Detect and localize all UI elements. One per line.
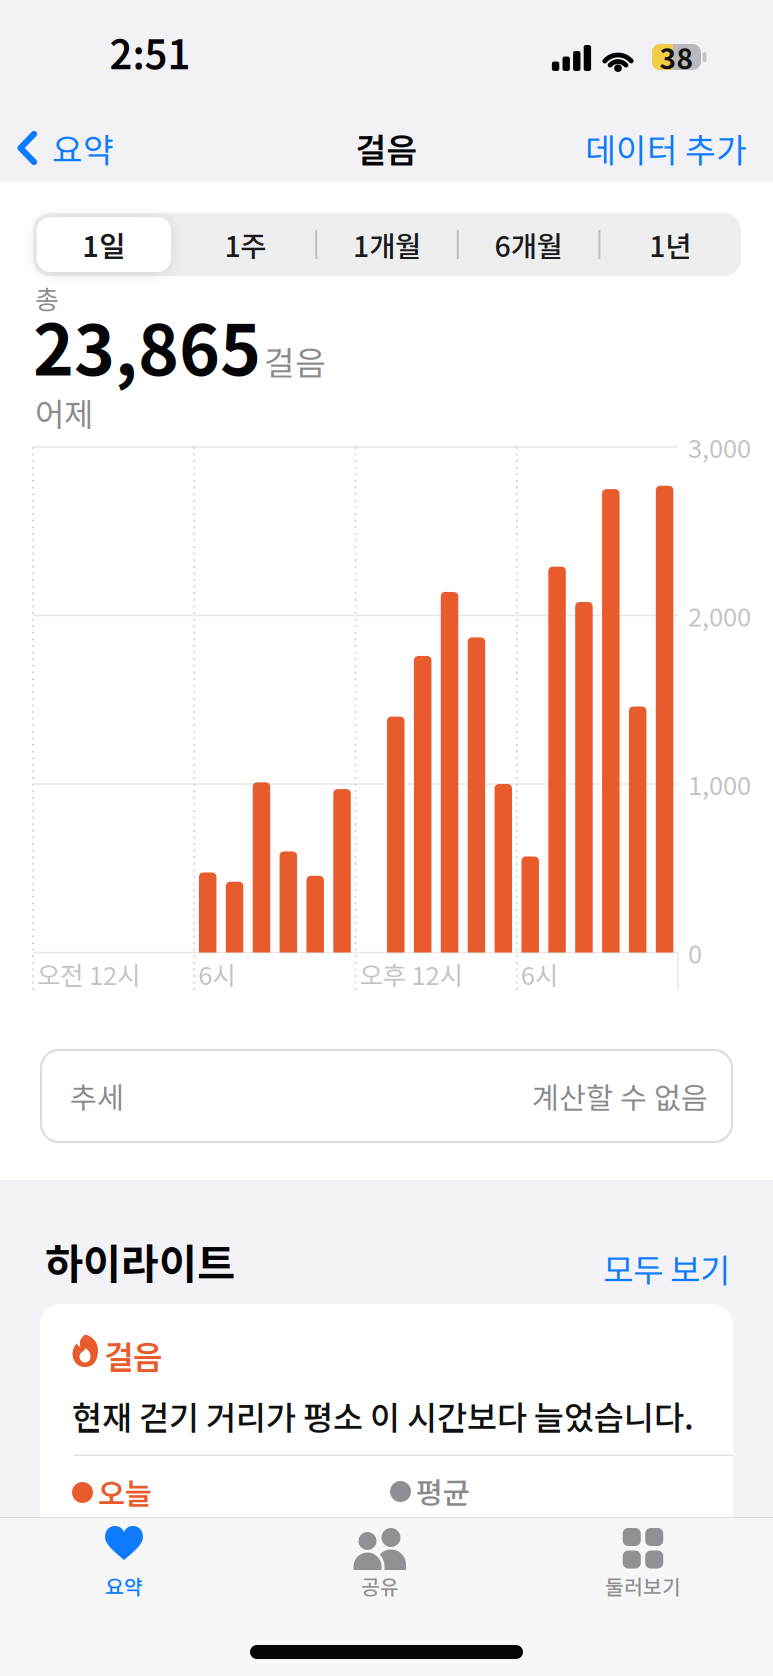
button[interactable]: 1일 bbox=[33, 213, 175, 276]
button[interactable]: 1개월 bbox=[316, 213, 458, 276]
staticText: 오전 12시 bbox=[37, 955, 140, 992]
staticText: 0 bbox=[688, 934, 702, 971]
staticText: 2:51 bbox=[109, 23, 190, 81]
staticText: 1개월 bbox=[353, 224, 421, 265]
staticText: 걸음 bbox=[104, 1332, 162, 1378]
button[interactable]: 6개월 bbox=[458, 213, 599, 276]
button[interactable]: 1년 bbox=[599, 213, 741, 276]
staticText: 2,000 bbox=[688, 597, 751, 634]
staticText: 1년 bbox=[649, 224, 691, 265]
staticText: 6시 bbox=[198, 955, 235, 992]
staticText: 둘러보기 bbox=[605, 1571, 681, 1600]
button[interactable]: 둘러보기 bbox=[553, 1528, 733, 1624]
staticText: 1,000 bbox=[688, 765, 751, 802]
staticText: 오늘 bbox=[98, 1471, 152, 1513]
staticText: 오후 12시 bbox=[359, 955, 462, 992]
staticText: 공유 bbox=[361, 1571, 399, 1600]
staticText: 3,000 bbox=[688, 428, 751, 465]
staticText: 계산할 수 없음 bbox=[532, 1075, 708, 1117]
staticText: 총 bbox=[35, 279, 59, 317]
staticText: 데이터 추가 bbox=[585, 124, 747, 172]
button[interactable]: 1주 bbox=[175, 213, 316, 276]
button[interactable]: 요약 bbox=[34, 1526, 214, 1622]
button[interactable]: 걸음 bbox=[40, 1304, 733, 1676]
staticText: 1주 bbox=[224, 224, 266, 265]
staticText: 6시 bbox=[521, 955, 558, 992]
staticText: 평균 bbox=[416, 1470, 470, 1512]
staticText: 38 bbox=[659, 37, 693, 77]
staticText: 추세 bbox=[70, 1075, 124, 1117]
staticText: 어제 bbox=[35, 389, 93, 435]
staticText: 현재 걷기 거리가 평소 이 시간보다 늘었습니다. bbox=[72, 1392, 694, 1439]
staticText: 걸음 bbox=[264, 337, 326, 385]
staticText: 하이라이트 bbox=[45, 1231, 235, 1291]
staticText: 요약 bbox=[105, 1571, 143, 1600]
staticText: 23,865 bbox=[33, 295, 261, 396]
staticText: 요약 bbox=[52, 124, 114, 172]
button[interactable]: 요약 bbox=[17, 124, 114, 172]
staticText: 걸음 bbox=[355, 124, 417, 172]
button[interactable]: 공유 bbox=[290, 1528, 470, 1624]
button[interactable]: 데이터 추가 bbox=[585, 124, 747, 172]
staticText: 모두 보기 bbox=[603, 1244, 730, 1292]
staticText: 1일 bbox=[82, 224, 125, 265]
button[interactable]: 모두 보기 bbox=[530, 1246, 730, 1290]
staticText: 6개월 bbox=[495, 224, 563, 265]
